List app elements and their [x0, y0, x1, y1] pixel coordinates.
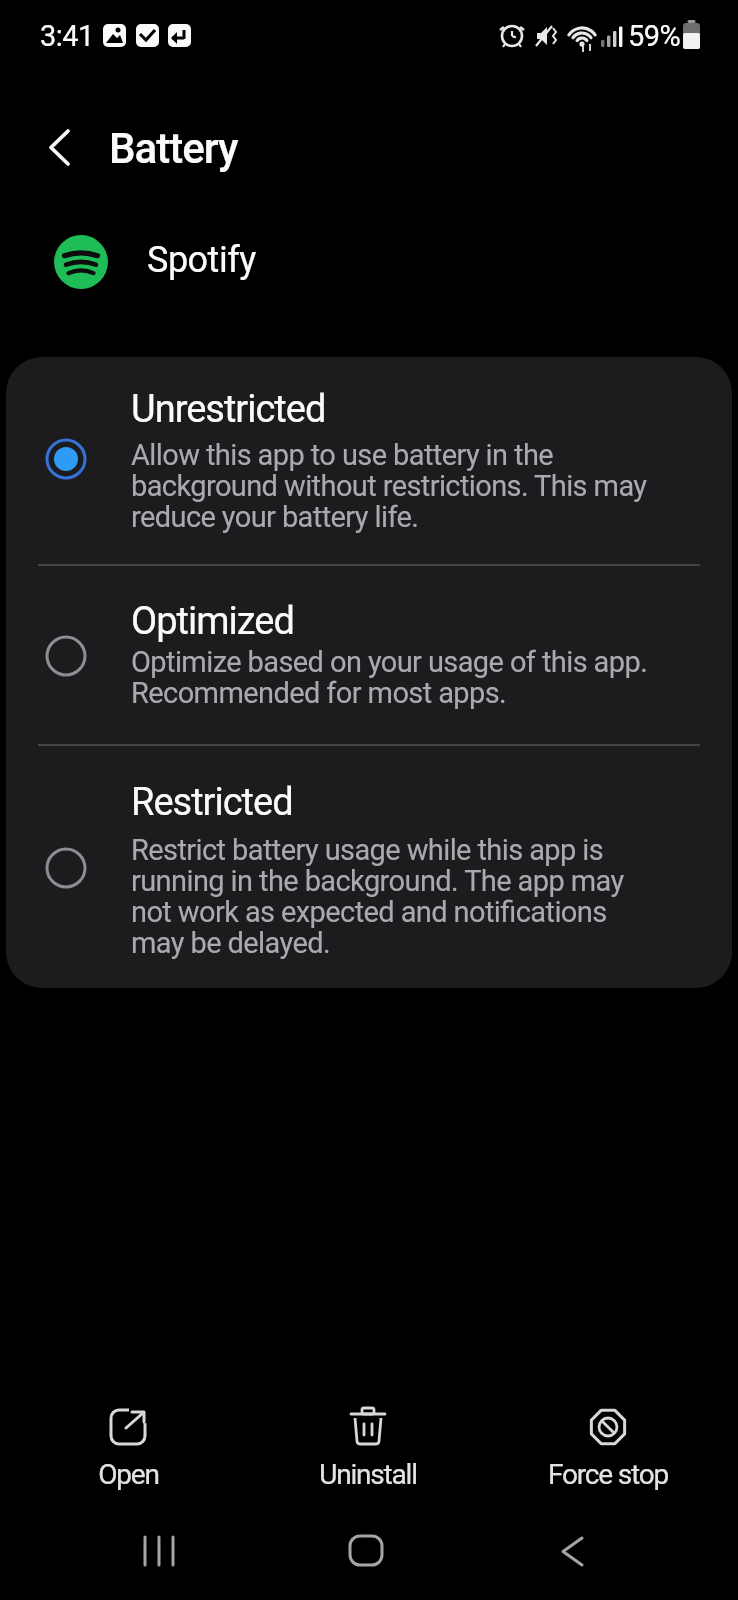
staticText: Optimize based on your usage of this app…	[131, 645, 648, 710]
staticText: Uninstall	[319, 1458, 417, 1491]
staticText: Open	[98, 1458, 159, 1491]
staticText: Force stop	[548, 1458, 668, 1491]
staticText: Unrestricted	[131, 387, 326, 432]
staticText: Restricted	[131, 780, 293, 825]
staticText: Restrict battery usage while this app is…	[131, 833, 624, 960]
staticText: Battery	[109, 124, 238, 173]
staticText: Allow this app to use battery in the bac…	[131, 438, 647, 534]
staticText: Optimized	[131, 599, 294, 644]
staticText: Spotify	[147, 239, 256, 281]
staticText: 3:41	[40, 19, 94, 53]
staticText: 59%	[628, 19, 681, 53]
